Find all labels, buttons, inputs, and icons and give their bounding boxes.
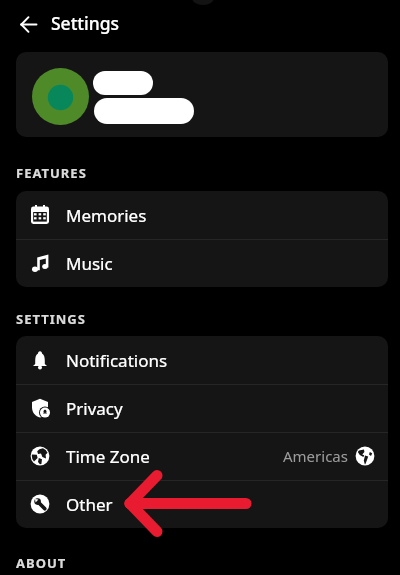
staticText: SETTINGS xyxy=(16,310,86,328)
button[interactable]: Account xyxy=(16,52,388,137)
staticText: Memories xyxy=(66,204,147,227)
button[interactable]: Back xyxy=(10,6,46,42)
staticText: Music xyxy=(66,252,113,275)
button[interactable]: Time Zone xyxy=(16,432,388,480)
staticText: Notifications xyxy=(66,349,168,372)
button[interactable]: Memories xyxy=(16,191,388,239)
button[interactable]: Other xyxy=(16,480,388,528)
staticText: Time Zone xyxy=(66,445,150,468)
button[interactable]: Music xyxy=(16,239,388,287)
staticText: Americas xyxy=(283,446,348,466)
staticText: ABOUT xyxy=(16,554,67,572)
button[interactable]: Notifications xyxy=(16,336,388,384)
staticText: FEATURES xyxy=(16,164,87,182)
staticText: Settings xyxy=(51,11,120,35)
staticText: Privacy xyxy=(66,397,123,420)
staticText: Other xyxy=(66,493,113,516)
button[interactable]: Privacy xyxy=(16,384,388,432)
